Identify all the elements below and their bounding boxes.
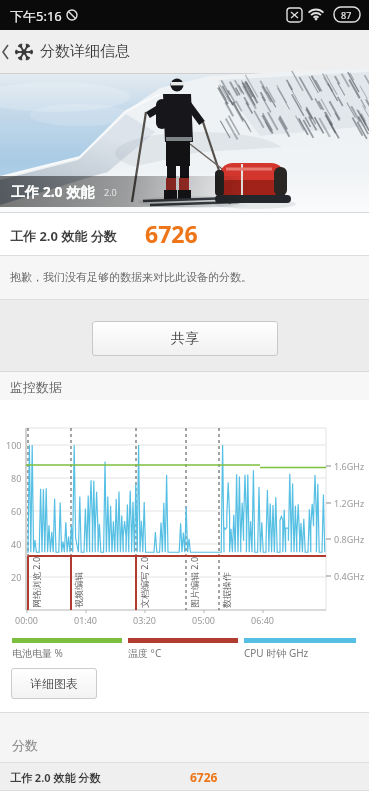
- staticText: 6726: [145, 218, 198, 249]
- button[interactable]: 工作 2.0 效能 分数: [0, 763, 369, 790]
- button[interactable]: 分数详细信息: [0, 30, 369, 74]
- staticText: 6726: [190, 769, 218, 785]
- button[interactable]: 共享: [92, 321, 278, 356]
- staticText: 87: [341, 9, 352, 21]
- staticText: 监控数据: [10, 379, 62, 395]
- staticText: 下午5:16: [10, 7, 62, 25]
- button[interactable]: 详细图表: [11, 668, 97, 699]
- staticText: 工作 2.0 效能 分数: [10, 227, 117, 245]
- staticText: 详细图表: [30, 676, 78, 691]
- staticText: 工作 2.0 效能 分数: [10, 770, 101, 785]
- staticText: 共享: [171, 330, 199, 348]
- staticText: 分数详细信息: [40, 42, 130, 61]
- staticText: 分数: [12, 737, 38, 753]
- staticText: 抱歉，我们没有足够的数据来对比此设备的分数。: [10, 270, 252, 284]
